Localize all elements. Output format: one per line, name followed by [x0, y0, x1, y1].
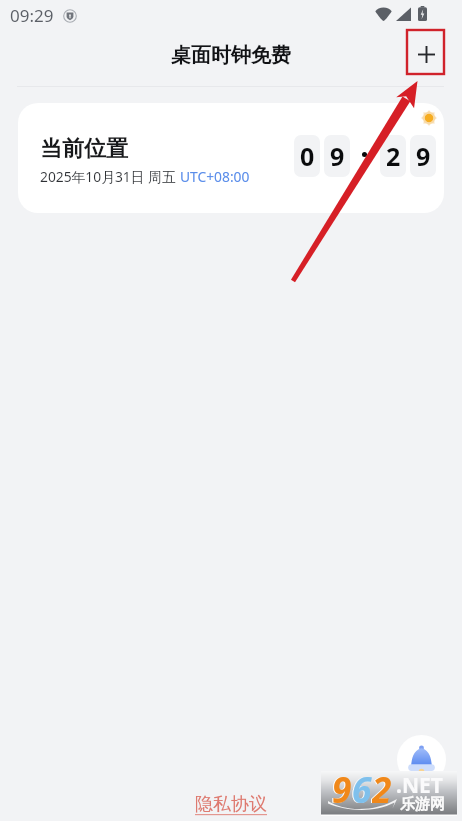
staticText: 乐游网	[400, 795, 445, 814]
staticText: 2	[372, 766, 392, 811]
staticText: 隐私协议	[195, 793, 267, 816]
staticText: 9	[332, 766, 352, 811]
button[interactable]: 隐私协议	[193, 792, 269, 817]
staticText: 9	[331, 766, 351, 811]
staticText: 0	[300, 139, 315, 173]
staticText: 2	[371, 766, 391, 811]
button[interactable]: 当前位置	[18, 103, 444, 213]
staticText: 2	[386, 139, 401, 173]
staticText: 2025年10月31日 周五	[40, 167, 180, 186]
staticText: 9	[416, 139, 431, 173]
button[interactable]: Notifications	[397, 735, 446, 784]
staticText: 6	[351, 766, 371, 811]
staticText: 9	[330, 139, 345, 173]
staticText: 09:29	[10, 4, 54, 27]
staticText: UTC+08:00	[180, 167, 250, 186]
staticText: .NET	[396, 771, 443, 800]
staticText: 当前位置	[40, 135, 128, 163]
staticText: 桌面时钟免费	[171, 43, 291, 68]
button[interactable]: Add	[408, 36, 444, 72]
staticText: 6	[352, 766, 372, 811]
